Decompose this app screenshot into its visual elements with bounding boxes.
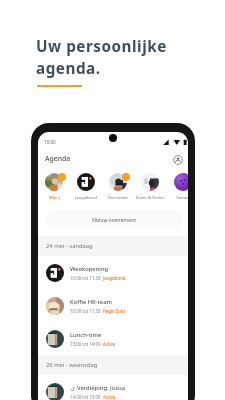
- staticText: Jeugdbond: [75, 195, 97, 201]
- staticText: 26 mei - woensdag: [46, 361, 98, 369]
- staticText: Agenda: [45, 154, 71, 163]
- staticText: Lunch-time: [70, 331, 102, 339]
- staticText: Kernteam: [108, 195, 128, 201]
- staticText: Weekopening: [70, 265, 109, 273]
- button[interactable]: Weekopening: [38, 256, 188, 289]
- staticText: 10:00 tot 11:30: [70, 275, 101, 281]
- button[interactable]: Delen & Geven: [129, 173, 171, 201]
- staticText: Mijn J: [49, 195, 60, 201]
- staticText: 13:00 tot 14:00: [70, 341, 101, 347]
- button[interactable]: Kernteam: [97, 173, 139, 201]
- staticText: Activa: [103, 394, 116, 400]
- staticText: Jeugdbond: [103, 275, 126, 281]
- button[interactable]: Samen: [162, 173, 188, 201]
- staticText: 10:00: [44, 139, 56, 145]
- button[interactable]: Jeugdbond: [65, 173, 107, 201]
- staticText: Koffie HR-team: [70, 298, 112, 306]
- staticText: Nieuw evenement: [92, 216, 137, 223]
- button[interactable]: Account: [173, 155, 183, 165]
- staticText: Samen: [176, 195, 188, 201]
- button[interactable]: Koffie HR-team: [38, 289, 188, 322]
- staticText: Verdieping: Jozua: [77, 384, 125, 392]
- staticText: 10:00 tot 11:30: [70, 308, 101, 314]
- staticText: Delen & Geven: [135, 195, 165, 201]
- staticText: 14:00 tot 15:00: [70, 394, 101, 400]
- staticText: Activa: [103, 341, 116, 347]
- button[interactable]: Lunch-time: [38, 322, 188, 355]
- staticText: Uw persoonlijke agenda.: [36, 36, 167, 78]
- button[interactable]: Verdieping: Jozua: [38, 375, 188, 400]
- button[interactable]: Mijn J: [38, 173, 75, 201]
- button[interactable]: Nieuw evenement: [46, 210, 182, 228]
- staticText: 24 mei - vandaag: [46, 242, 93, 250]
- staticText: Regio Zuid: [103, 308, 125, 314]
